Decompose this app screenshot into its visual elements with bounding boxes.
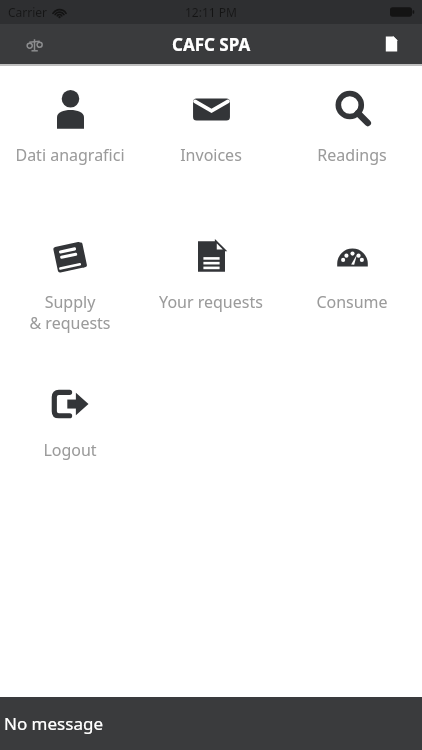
staticText: Readings — [317, 144, 387, 166]
button[interactable]: Supply & requests — [0, 232, 140, 334]
staticText: CAFC SPA — [172, 33, 251, 56]
button[interactable]: Documents — [374, 27, 408, 61]
staticText: Supply & requests — [29, 291, 111, 334]
button[interactable]: No message — [0, 697, 422, 750]
button[interactable]: Logout — [0, 380, 140, 461]
button[interactable]: Menu — [18, 28, 50, 60]
staticText: Carrier — [8, 4, 48, 20]
button[interactable]: Consume — [281, 232, 422, 313]
button[interactable]: Readings — [281, 85, 422, 166]
button[interactable]: Dati anagrafici — [0, 85, 140, 166]
staticText: Consume — [316, 291, 388, 313]
staticText: Invoices — [180, 144, 242, 166]
staticText: 12:11 PM — [185, 4, 237, 20]
button[interactable]: Your requests — [140, 232, 281, 313]
staticText: Logout — [43, 439, 97, 461]
staticText: Your requests — [159, 291, 263, 313]
button[interactable]: Invoices — [140, 85, 281, 166]
staticText: Dati anagrafici — [15, 144, 125, 166]
staticText: No message — [4, 712, 103, 735]
